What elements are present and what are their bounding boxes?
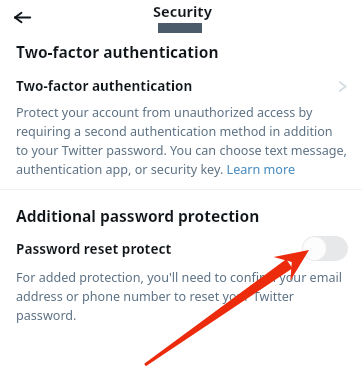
- button[interactable]: Password reset protect: [0, 236, 362, 261]
- staticText: For added protection, you'll need to con…: [16, 269, 348, 323]
- staticText: Password reset protect: [16, 240, 302, 258]
- button[interactable]: Toggle password reset protect: [302, 236, 348, 261]
- staticText: Security: [153, 1, 212, 21]
- button[interactable]: Two-factor authentication: [0, 75, 362, 97]
- staticText: Protect your account from unauthorized a…: [16, 104, 348, 177]
- staticText: Additional password protection: [16, 205, 260, 226]
- staticText: Two-factor authentication: [16, 41, 219, 62]
- staticText: Two-factor authentication: [16, 77, 338, 95]
- button[interactable]: Back: [6, 1, 38, 33]
